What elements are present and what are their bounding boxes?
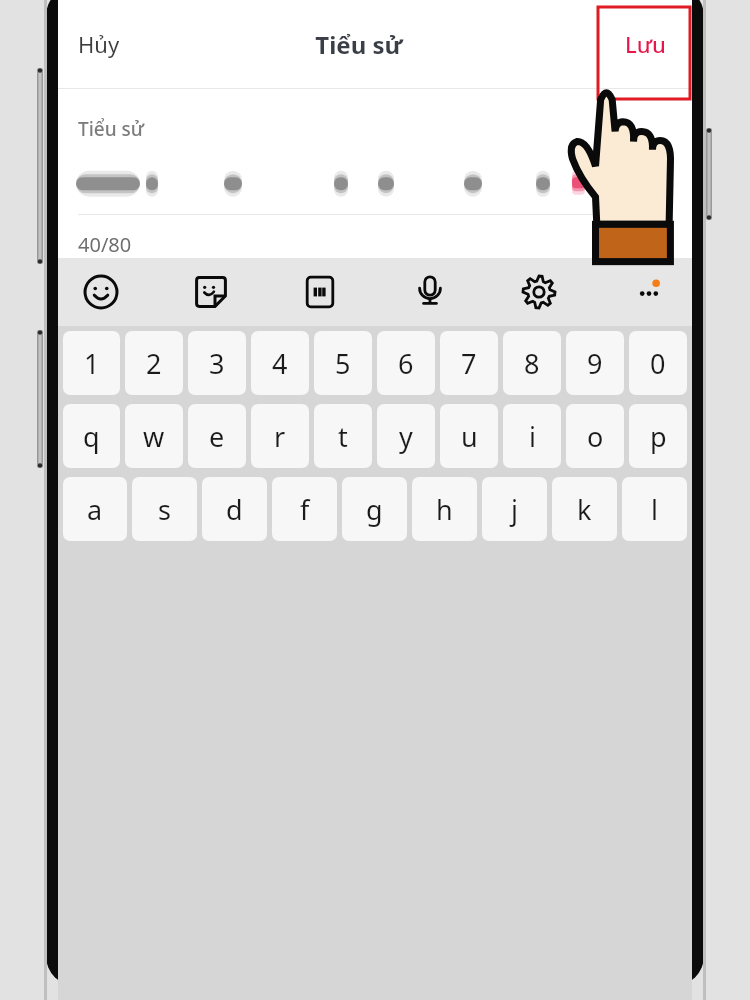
button[interactable]: q bbox=[63, 404, 120, 468]
button[interactable]: 0 bbox=[629, 331, 687, 395]
staticText: r bbox=[274, 418, 286, 455]
button[interactable]: 9 bbox=[566, 331, 624, 395]
staticText: 3 bbox=[209, 345, 225, 382]
button[interactable]: g bbox=[342, 477, 407, 541]
staticText: e bbox=[209, 418, 225, 455]
staticText: l bbox=[651, 491, 658, 528]
staticText: 40/80 bbox=[78, 231, 132, 258]
staticText: Lưu bbox=[625, 29, 666, 59]
staticText: a bbox=[87, 491, 103, 528]
staticText: h bbox=[436, 491, 453, 528]
button[interactable]: h bbox=[412, 477, 477, 541]
staticText: 1 bbox=[84, 345, 100, 382]
staticText: p bbox=[650, 418, 667, 455]
staticText: j bbox=[511, 491, 518, 528]
button[interactable]: y bbox=[377, 404, 435, 468]
button[interactable]: i bbox=[503, 404, 561, 468]
button[interactable]: Emoji bbox=[70, 261, 132, 323]
button[interactable]: f bbox=[272, 477, 337, 541]
button[interactable]: d bbox=[202, 477, 267, 541]
button[interactable]: p bbox=[629, 404, 687, 468]
button[interactable]: More options bbox=[618, 261, 680, 323]
staticText: 7 bbox=[461, 345, 477, 382]
staticText: d bbox=[226, 491, 243, 528]
button[interactable]: Lưu bbox=[599, 11, 692, 77]
button[interactable]: 6 bbox=[377, 331, 435, 395]
button[interactable]: 2 bbox=[125, 331, 183, 395]
staticText: s bbox=[158, 491, 171, 528]
staticText: Tiểu sử bbox=[315, 28, 403, 61]
staticText: i bbox=[529, 418, 536, 455]
staticText: y bbox=[399, 418, 413, 455]
staticText: k bbox=[577, 491, 592, 528]
staticText: q bbox=[83, 418, 100, 455]
staticText: 8 bbox=[524, 345, 540, 382]
button[interactable]: GIF bbox=[289, 261, 351, 323]
button[interactable]: a bbox=[63, 477, 127, 541]
staticText: 0 bbox=[650, 345, 666, 382]
button[interactable]: j bbox=[482, 477, 547, 541]
staticText: 2 bbox=[146, 345, 162, 382]
button[interactable]: w bbox=[125, 404, 183, 468]
button[interactable]: e bbox=[188, 404, 246, 468]
button[interactable]: 4 bbox=[251, 331, 309, 395]
staticText: f bbox=[300, 491, 310, 528]
button[interactable]: 5 bbox=[314, 331, 372, 395]
button[interactable]: k bbox=[552, 477, 617, 541]
button[interactable]: 1 bbox=[63, 331, 120, 395]
button[interactable]: u bbox=[440, 404, 498, 468]
button[interactable]: Sticker bbox=[180, 261, 242, 323]
button[interactable]: t bbox=[314, 404, 372, 468]
button[interactable]: l bbox=[622, 477, 687, 541]
button[interactable]: Settings bbox=[508, 261, 570, 323]
button[interactable]: o bbox=[566, 404, 624, 468]
button[interactable]: 8 bbox=[503, 331, 561, 395]
staticText: Tiểu sử bbox=[78, 116, 145, 142]
button[interactable]: Hủy bbox=[58, 15, 140, 73]
button[interactable]: 3 bbox=[188, 331, 246, 395]
staticText: w bbox=[143, 418, 165, 455]
button[interactable]: Voice input bbox=[399, 261, 461, 323]
staticText: u bbox=[461, 418, 478, 455]
button[interactable]: r bbox=[251, 404, 309, 468]
staticText: 5 bbox=[335, 345, 351, 382]
staticText: t bbox=[338, 418, 348, 455]
staticText: Hủy bbox=[78, 29, 120, 59]
button[interactable]: 7 bbox=[440, 331, 498, 395]
staticText: 6 bbox=[398, 345, 414, 382]
staticText: 4 bbox=[272, 345, 288, 382]
staticText: 9 bbox=[587, 345, 603, 382]
staticText: g bbox=[366, 491, 383, 528]
button[interactable]: s bbox=[132, 477, 197, 541]
staticText: o bbox=[587, 418, 604, 455]
